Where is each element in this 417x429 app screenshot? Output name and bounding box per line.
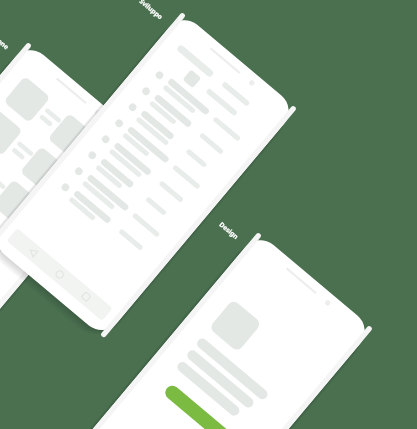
button[interactable]: Phone mockups showcase bbox=[0, 0, 417, 429]
